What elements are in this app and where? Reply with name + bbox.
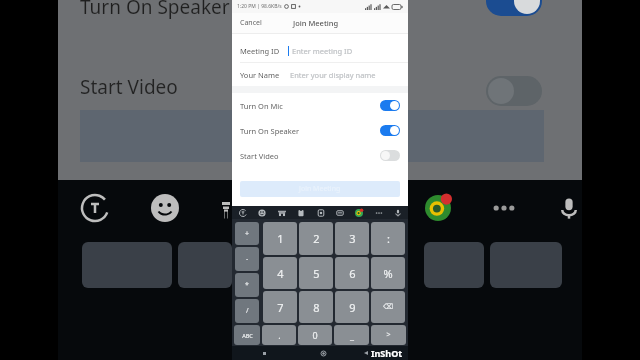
staticText: : xyxy=(387,231,390,246)
button[interactable]: Turn On Mic xyxy=(232,93,408,118)
button[interactable]: Clipboard xyxy=(294,206,307,219)
staticText: * xyxy=(245,280,249,290)
staticText: Cancel xyxy=(240,18,262,28)
button[interactable]: . xyxy=(262,325,296,345)
staticText: _ xyxy=(350,329,354,341)
staticText: InShOt xyxy=(371,347,403,359)
button[interactable]: * xyxy=(235,273,259,297)
button[interactable]: Start Video xyxy=(232,143,408,168)
staticText: 7 xyxy=(277,300,284,315)
staticText: - xyxy=(246,254,249,264)
button[interactable]: + xyxy=(235,222,259,245)
button[interactable]: App xyxy=(352,206,365,219)
button[interactable]: Turn On Speaker xyxy=(232,118,408,143)
staticText: Meeting ID xyxy=(240,46,280,56)
staticText: Start Video xyxy=(240,151,279,161)
button[interactable]: 5 xyxy=(299,257,333,289)
staticText: + xyxy=(245,229,250,239)
staticText: Turn On Speaker xyxy=(80,0,230,20)
staticText: Turn On Mic xyxy=(240,101,283,111)
staticText: Join Meeting xyxy=(293,18,339,28)
button[interactable]: Toolbar xyxy=(333,206,346,219)
button[interactable]: Back xyxy=(362,349,370,357)
button[interactable]: Join Meeting xyxy=(287,14,345,32)
button[interactable]: > xyxy=(371,325,406,345)
staticText: 6 xyxy=(349,266,356,281)
button[interactable]: 7 xyxy=(263,291,297,323)
button[interactable]: 1 xyxy=(263,222,297,255)
staticText: Your Name xyxy=(240,70,280,80)
staticText: 1 xyxy=(277,231,284,246)
button[interactable]: 0 xyxy=(298,325,332,345)
button[interactable]: ⌫ xyxy=(371,291,405,323)
staticText: Join Meeting xyxy=(299,184,341,194)
button[interactable]: Voice input xyxy=(391,206,404,219)
staticText: % xyxy=(383,266,393,281)
button[interactable]: 9 xyxy=(335,291,369,323)
staticText: 5 xyxy=(313,266,320,281)
button[interactable]: : xyxy=(371,222,405,255)
button[interactable]: Cancel xyxy=(232,14,270,32)
button[interactable]: 4 xyxy=(263,257,297,289)
staticText: 1:20 PM | 98.6KB/s xyxy=(237,3,282,10)
staticText: 2 xyxy=(313,231,320,246)
button[interactable]: % xyxy=(371,257,405,289)
button[interactable]: More xyxy=(372,206,385,219)
staticText: 8 xyxy=(313,300,320,315)
staticText: > xyxy=(386,330,391,340)
staticText: ABC xyxy=(242,332,253,339)
button[interactable]: Translate xyxy=(236,206,249,219)
staticText: . xyxy=(278,329,281,341)
button[interactable]: 6 xyxy=(335,257,369,289)
button[interactable]: Meeting ID xyxy=(232,39,408,62)
button[interactable]: / xyxy=(235,299,259,323)
staticText: Enter meeting ID xyxy=(292,46,353,56)
staticText: Turn On Speaker xyxy=(240,126,300,136)
button[interactable]: _ xyxy=(334,325,369,345)
staticText: 4 xyxy=(277,266,284,281)
button[interactable]: - xyxy=(235,247,259,271)
staticText: Enter your display name xyxy=(290,70,376,80)
button[interactable]: Store xyxy=(275,206,288,219)
staticText: / xyxy=(246,306,249,316)
staticText: 3 xyxy=(349,231,356,246)
button[interactable]: 3 xyxy=(335,222,369,255)
staticText: ⌫ xyxy=(383,303,393,311)
staticText: 0 xyxy=(312,329,318,341)
button[interactable]: ABC xyxy=(234,325,260,345)
staticText: Start Video xyxy=(80,74,178,100)
button[interactable]: Home xyxy=(319,349,327,357)
button[interactable]: 2 xyxy=(299,222,333,255)
button[interactable]: 8 xyxy=(299,291,333,323)
button[interactable]: Your Name xyxy=(232,63,408,86)
button[interactable]: Emoji xyxy=(255,206,268,219)
button[interactable]: Recents xyxy=(260,349,268,357)
button[interactable]: Theme xyxy=(314,206,327,219)
staticText: 9 xyxy=(349,300,356,315)
